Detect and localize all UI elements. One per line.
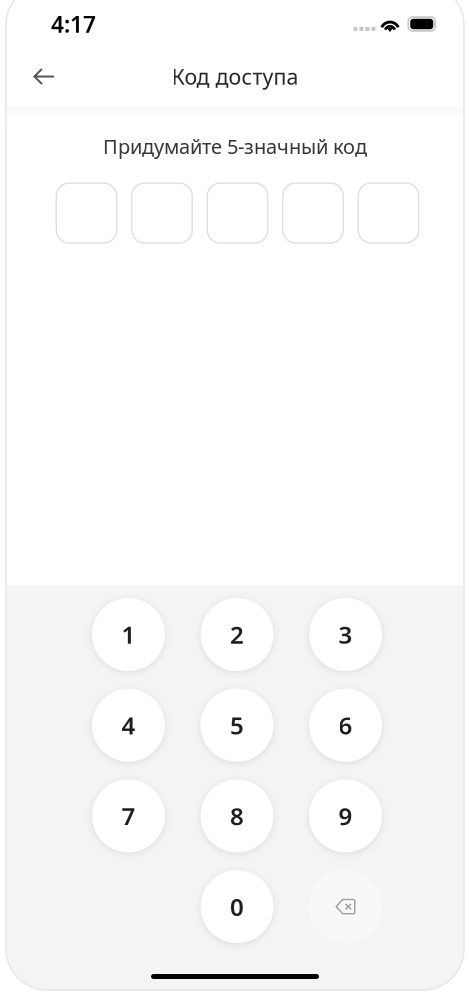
button[interactable]: 0 xyxy=(200,870,273,943)
button[interactable]: 7 xyxy=(92,779,165,852)
button[interactable]: 1 xyxy=(92,598,165,671)
button[interactable]: 4 xyxy=(92,689,165,762)
staticText: 6 xyxy=(338,709,352,741)
button[interactable]: 6 xyxy=(309,689,382,762)
staticText: 3 xyxy=(338,619,352,650)
staticText: 7 xyxy=(121,800,135,832)
button[interactable]: Delete xyxy=(309,870,382,943)
staticText: 4:17 xyxy=(51,9,96,39)
button[interactable]: 3 xyxy=(309,598,382,671)
button[interactable]: 8 xyxy=(200,779,273,852)
staticText: 1 xyxy=(121,619,135,650)
button[interactable]: 9 xyxy=(309,779,382,852)
staticText: 4 xyxy=(121,709,135,741)
staticText: 5 xyxy=(230,709,244,741)
button[interactable]: 2 xyxy=(200,598,273,671)
staticText: 9 xyxy=(338,800,352,832)
staticText: Код доступа xyxy=(171,62,298,91)
button[interactable]: 5 xyxy=(200,689,273,762)
staticText: 8 xyxy=(230,800,244,832)
button[interactable]: Back xyxy=(22,54,66,98)
staticText: 2 xyxy=(230,619,244,650)
staticText: Придумайте 5-значный код xyxy=(103,133,367,160)
staticText: 0 xyxy=(230,891,244,923)
